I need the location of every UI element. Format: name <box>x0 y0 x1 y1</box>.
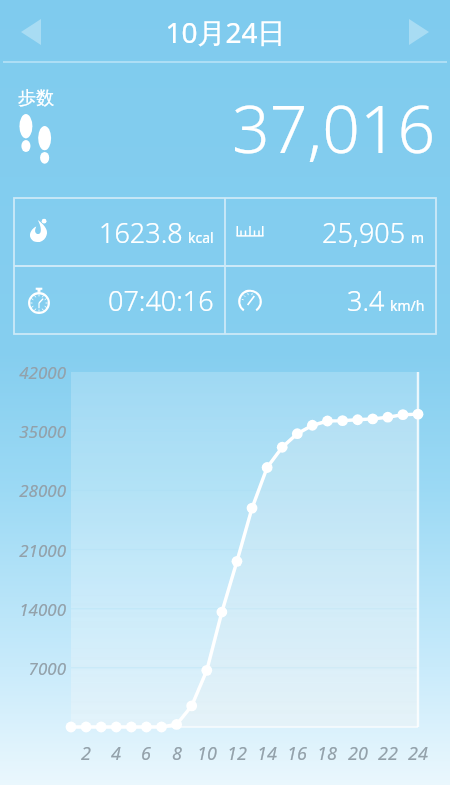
staticText: 14000 <box>2 598 66 621</box>
staticText: 21000 <box>2 539 66 562</box>
staticText: 20 <box>346 741 370 766</box>
staticText: 2 <box>74 741 98 766</box>
staticText: 37,016 <box>232 82 436 172</box>
staticText: 18 <box>315 741 339 766</box>
button[interactable]: 1623.8 <box>14 198 225 266</box>
staticText: 10 <box>195 741 219 766</box>
staticText: 25,905 <box>322 214 406 251</box>
staticText: 3.4 <box>347 282 385 319</box>
staticText: 28000 <box>2 479 66 502</box>
staticText: kcal <box>188 228 214 247</box>
staticText: 10月24日 <box>165 13 286 51</box>
button[interactable]: 25,905 <box>225 198 436 266</box>
button[interactable]: 3.4 <box>225 266 436 334</box>
staticText: 22 <box>376 741 400 766</box>
staticText: 35000 <box>2 420 66 443</box>
staticText: km/h <box>390 296 425 315</box>
staticText: 42000 <box>2 361 66 384</box>
staticText: 14 <box>255 741 279 766</box>
button[interactable]: Next day <box>394 7 444 57</box>
button[interactable]: Previous day <box>6 7 56 57</box>
staticText: m <box>411 228 425 247</box>
staticText: 6 <box>134 741 158 766</box>
button[interactable]: 07:40:16 <box>14 266 225 334</box>
staticText: 歩数 <box>18 87 54 110</box>
staticText: 4 <box>104 741 128 766</box>
staticText: 7000 <box>2 657 66 680</box>
staticText: 8 <box>165 741 189 766</box>
staticText: 07:40:16 <box>108 282 214 319</box>
staticText: 12 <box>225 741 249 766</box>
staticText: 16 <box>285 741 309 766</box>
staticText: 24 <box>406 741 430 766</box>
staticText: 1623.8 <box>99 214 183 251</box>
